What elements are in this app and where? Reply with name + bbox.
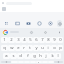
button[interactable]: p [57,45,63,51]
button[interactable] [2,7,6,11]
button[interactable]: Location [46,19,55,28]
button[interactable]: i [45,45,51,51]
button[interactable]: Settings [42,29,48,35]
staticText: 7 [41,37,44,43]
button[interactable]: Apps [2,19,11,28]
button[interactable]: k [49,53,55,59]
staticText: w [10,45,14,51]
button[interactable]: h [37,53,43,59]
button[interactable]: 8 [45,37,51,43]
button[interactable]: s [10,53,17,59]
staticText: q [3,45,6,51]
staticText: a [5,53,8,59]
button[interactable]: 6 [33,37,39,43]
staticText: g [33,53,36,59]
staticText: 9 [53,37,56,43]
button[interactable]: f [24,53,31,59]
staticText: l [57,53,59,59]
staticText: j [45,53,47,59]
staticText: i [47,45,49,51]
button[interactable]: q [1,45,8,51]
staticText: s [12,53,15,59]
button[interactable]: Emoji [35,19,44,28]
staticText: 4 [23,37,26,43]
button[interactable]: u [39,45,45,51]
button[interactable]: 5 [27,37,33,43]
staticText: f [27,53,29,59]
button[interactable]: 9 [51,37,57,43]
staticText: 6 [35,37,38,43]
button[interactable]: l [55,53,61,59]
staticText: 8 [47,37,50,43]
staticText: k [51,53,54,59]
button[interactable]: Sticker [28,29,34,35]
staticText: o [53,45,56,51]
button[interactable]: Send [57,20,62,27]
button[interactable]: Shift [1,61,11,63]
staticText: 1 [3,37,6,43]
button[interactable]: More [56,29,62,35]
staticText: u [41,45,44,51]
button[interactable]: g [31,53,37,59]
button[interactable]: 7 [39,37,45,43]
staticText: t [29,45,31,51]
button[interactable]: 4 [21,37,27,43]
button[interactable]: j [43,53,49,59]
button[interactable]: d [17,53,24,59]
button[interactable]: Camera [24,19,33,28]
button[interactable]: Backspace [54,61,63,63]
staticText: r [23,45,25,51]
button[interactable]: w [8,45,15,51]
button[interactable]: 3 [15,37,21,43]
button[interactable]: o [51,45,57,51]
button[interactable]: t [27,45,33,51]
staticText: p [59,45,62,51]
staticText: 2 [10,37,13,43]
staticText: 5 [29,37,32,43]
staticText: d [19,53,22,59]
button[interactable]: Gallery [13,19,22,28]
button[interactable]: a [3,53,10,59]
button[interactable]: Google [2,29,8,35]
button[interactable]: r [21,45,27,51]
staticText: 0 [59,37,62,43]
button[interactable]: 0 [57,37,63,43]
staticText: y [35,45,38,51]
button[interactable]: 1 [1,37,8,43]
staticText: 3 [17,37,20,43]
staticText: e [17,45,20,51]
staticText: b [38,61,41,63]
button[interactable]: b [36,61,42,63]
button[interactable]: 2 [8,37,15,43]
button[interactable]: e [15,45,21,51]
button[interactable]: y [33,45,39,51]
staticText: h [39,53,42,59]
